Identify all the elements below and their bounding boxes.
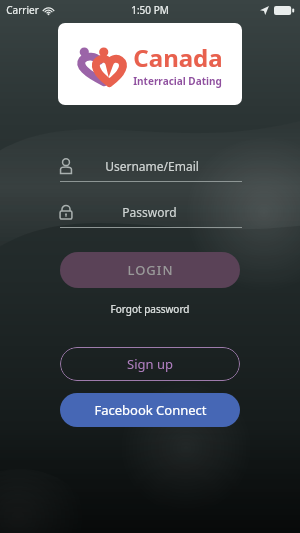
- staticText: Forgot password: [110, 302, 190, 316]
- staticText: 1:50 PM: [131, 3, 169, 17]
- button[interactable]: Username: [58, 158, 242, 182]
- other: Username: [58, 158, 74, 174]
- staticText: Canada: [133, 41, 223, 74]
- staticText: Interracial Dating: [133, 74, 222, 88]
- button[interactable]: Forgot password: [100, 299, 200, 319]
- button[interactable]: Facebook Connect: [60, 393, 240, 427]
- staticText: Facebook Connect: [94, 401, 207, 419]
- button[interactable]: Password: [58, 204, 242, 228]
- staticText: Username/Email: [105, 158, 199, 174]
- staticText: Carrier: [6, 3, 39, 17]
- other: Password: [58, 204, 74, 220]
- staticText: Password: [122, 204, 177, 220]
- staticText: Sign up: [127, 355, 173, 373]
- staticText: LOGIN: [127, 261, 174, 279]
- button[interactable]: Sign up: [60, 347, 240, 381]
- button[interactable]: LOGIN: [60, 252, 240, 288]
